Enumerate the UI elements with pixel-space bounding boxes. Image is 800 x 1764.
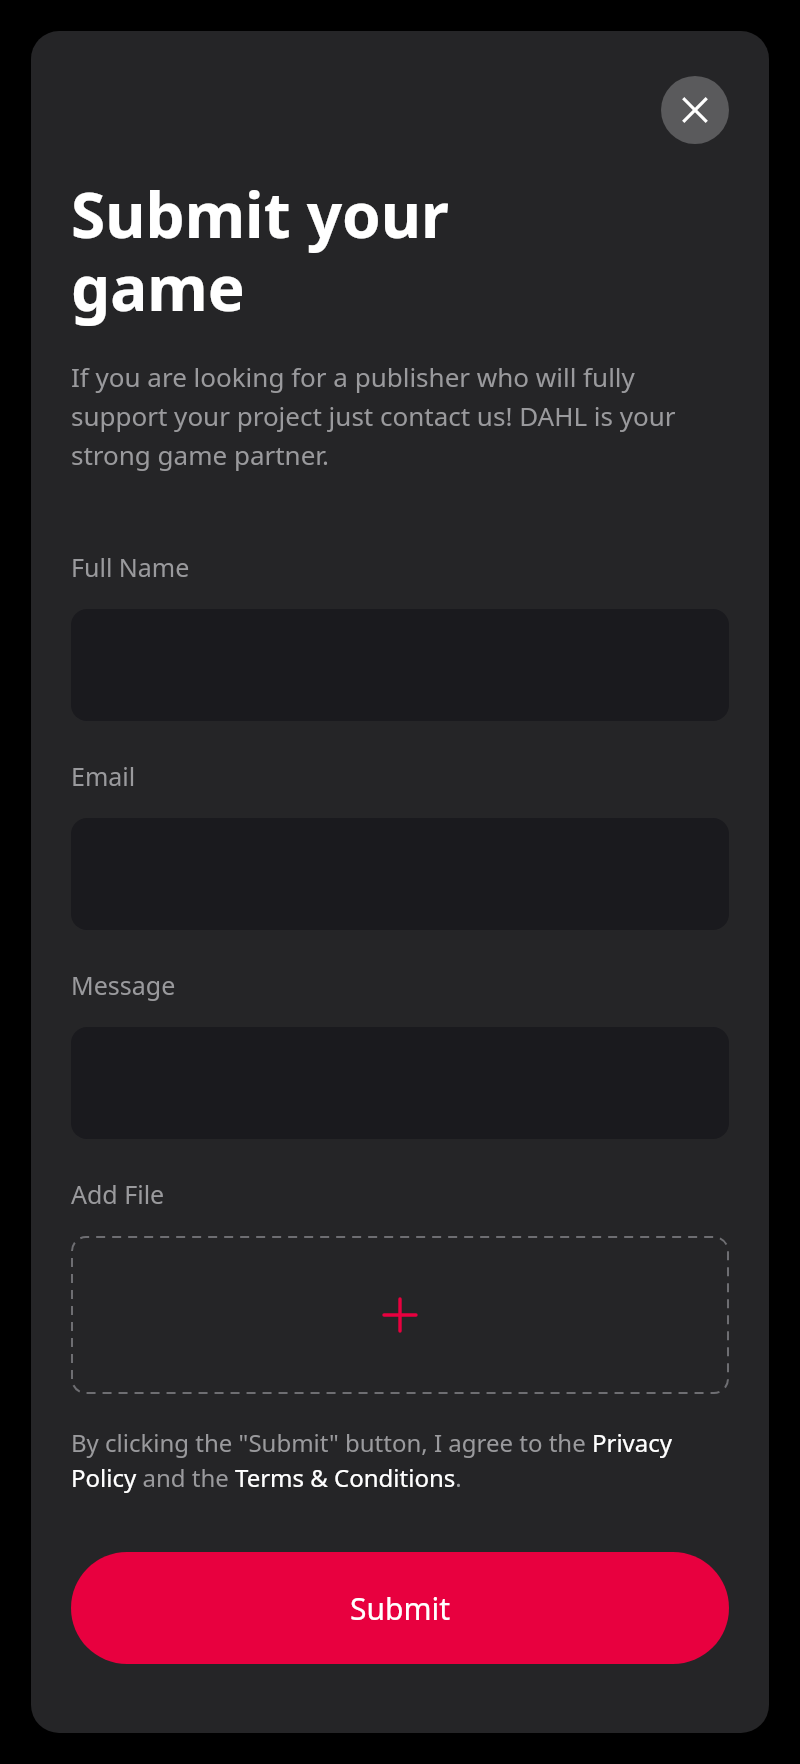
staticText: By clicking the "Submit" button, I agree… [71, 1426, 729, 1494]
staticText: Submit [350, 1588, 451, 1629]
staticText: Add File [71, 1177, 165, 1211]
staticText: Submit your game [71, 172, 449, 329]
button[interactable]: Submit [71, 1552, 729, 1664]
button[interactable]: Add file [71, 1236, 729, 1394]
staticText: Email [71, 759, 136, 793]
staticText: Message [71, 968, 176, 1002]
staticText: If you are looking for a publisher who w… [71, 359, 729, 472]
staticText: Full Name [71, 550, 190, 584]
button[interactable]: Close [661, 76, 729, 144]
